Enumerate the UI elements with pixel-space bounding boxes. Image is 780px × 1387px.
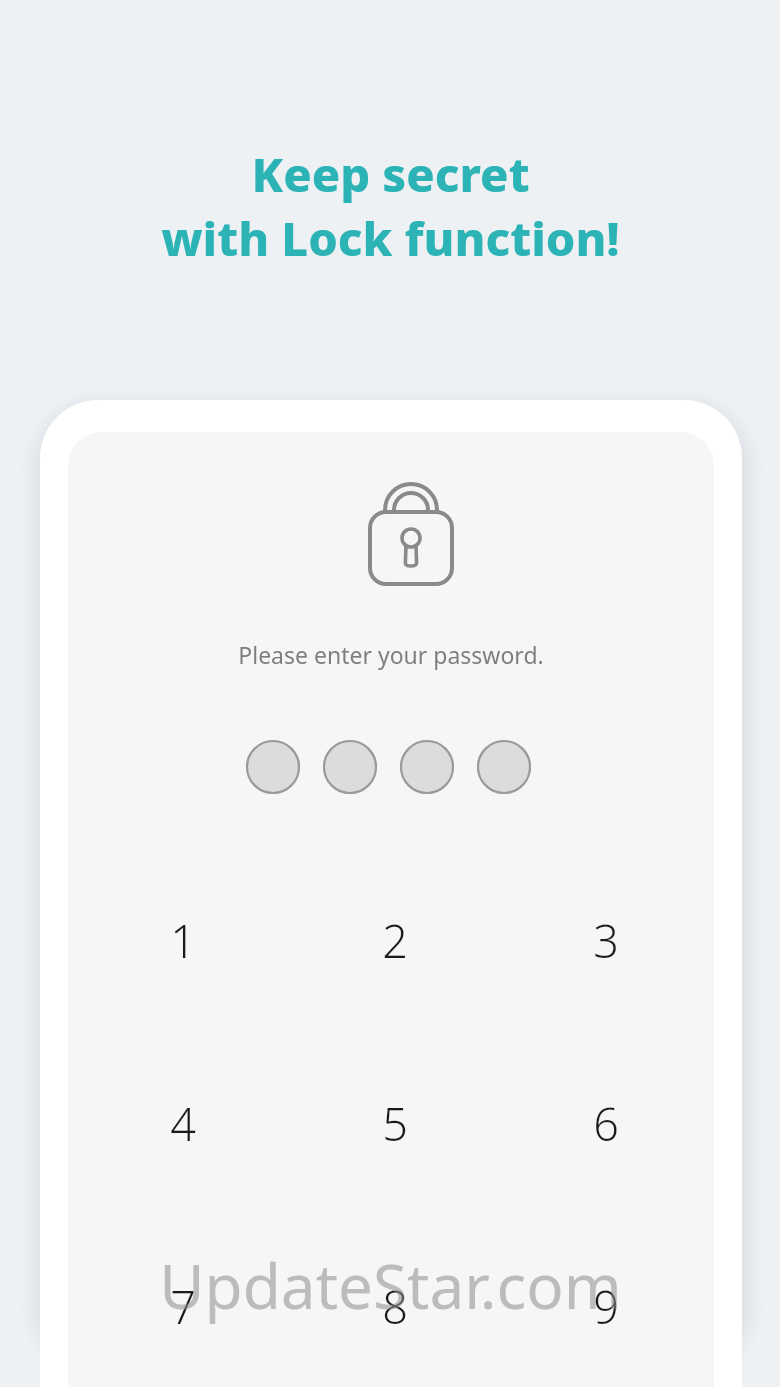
button[interactable]: 4 (83, 1043, 283, 1203)
button[interactable]: 9 (506, 1226, 706, 1386)
staticText: 3 (593, 910, 619, 971)
staticText: 8 (382, 1276, 408, 1337)
other: Locked (356, 472, 466, 590)
button[interactable]: 5 (295, 1043, 495, 1203)
staticText: 1 (170, 910, 196, 971)
button[interactable]: 1 (83, 860, 283, 1020)
staticText: 2 (382, 910, 408, 971)
staticText: 9 (593, 1276, 619, 1337)
button[interactable]: 6 (506, 1043, 706, 1203)
staticText: 7 (170, 1276, 196, 1337)
staticText: UpdateStar.com (159, 1243, 622, 1327)
staticText: Keep secret (251, 142, 530, 206)
staticText: 4 (170, 1093, 196, 1154)
staticText: Please enter your password. (238, 639, 544, 670)
button[interactable]: 7 (83, 1226, 283, 1386)
staticText: with Lock function! (161, 206, 620, 270)
button[interactable]: 2 (295, 860, 495, 1020)
staticText: 5 (382, 1093, 408, 1154)
staticText: 6 (593, 1093, 619, 1154)
button[interactable]: 8 (295, 1226, 495, 1386)
button[interactable]: 3 (506, 860, 706, 1020)
